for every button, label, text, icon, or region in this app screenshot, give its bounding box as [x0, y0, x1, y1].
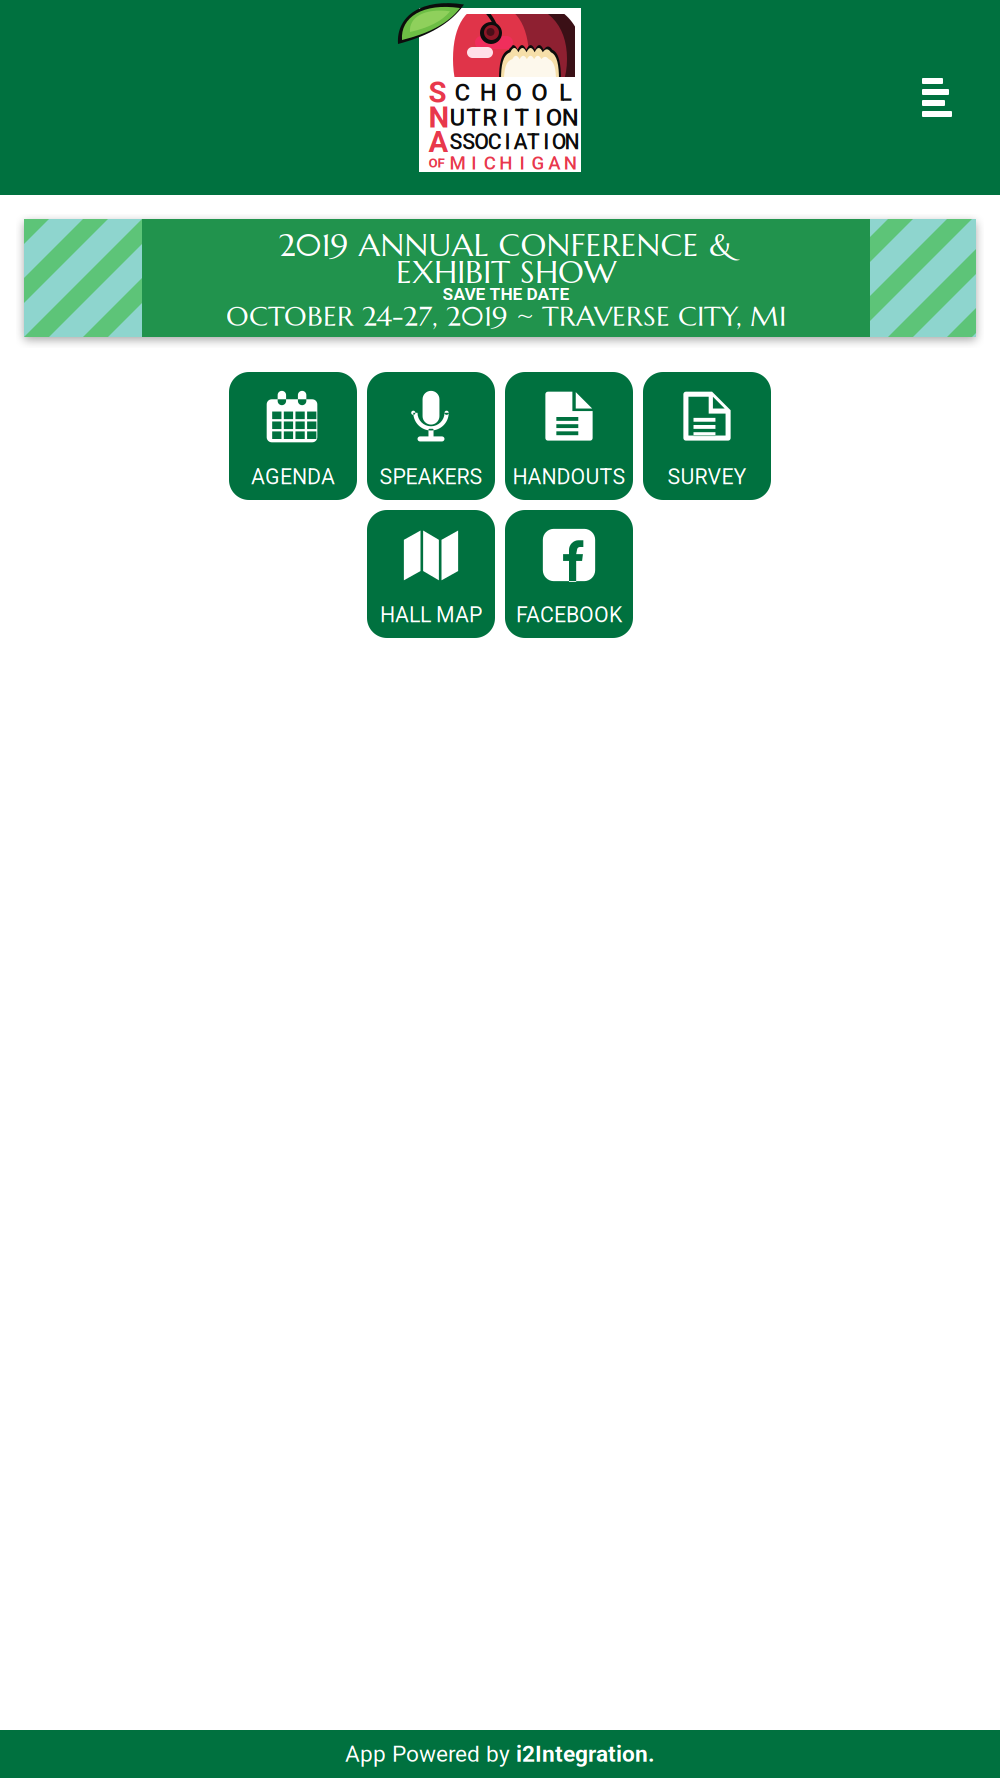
staticText: 2019 ANNUAL CONFERENCE & — [278, 225, 733, 265]
staticText: I — [505, 129, 511, 154]
staticText: O — [505, 78, 522, 106]
staticText: N — [565, 129, 580, 154]
staticText: S — [449, 129, 462, 154]
staticText: H — [499, 152, 512, 174]
staticText: T — [527, 129, 540, 154]
staticText: SAVE THE DATE — [442, 284, 569, 304]
staticText: HANDOUTS — [512, 464, 625, 489]
staticText: S — [462, 129, 475, 154]
staticText: OF — [428, 155, 444, 171]
staticText: N — [564, 152, 577, 174]
staticText: S — [428, 75, 446, 110]
button[interactable]: FACEBOOK — [505, 510, 633, 638]
staticText: i2Integration. — [516, 1741, 655, 1767]
button[interactable]: AGENDA — [229, 372, 357, 500]
button[interactable]: SPEAKERS — [367, 372, 495, 500]
staticText: G — [531, 152, 544, 174]
staticText: O — [474, 129, 489, 154]
staticText: C — [488, 129, 502, 154]
staticText: O — [531, 78, 548, 106]
staticText: A — [428, 125, 448, 159]
staticText: A — [513, 129, 527, 154]
staticText: O — [552, 129, 567, 154]
button[interactable]: Menu — [906, 62, 968, 132]
staticText: OCTOBER 24-27, 2019 ~ TRAVERSE CITY, MI — [226, 298, 786, 333]
staticText: AGENDA — [251, 464, 335, 489]
staticText: EXHIBIT SHOW — [396, 252, 616, 292]
staticText: SPEAKERS — [379, 464, 482, 489]
staticText: R — [482, 103, 497, 131]
staticText: I — [519, 152, 524, 174]
staticText: A — [548, 152, 560, 174]
button[interactable]: HALL MAP — [367, 510, 495, 638]
staticText: App Powered by — [345, 1741, 516, 1767]
staticText: O — [546, 103, 563, 131]
staticText: I — [471, 152, 476, 174]
staticText: I — [543, 129, 549, 154]
staticText: T — [466, 103, 481, 131]
staticText: H — [480, 78, 497, 106]
button[interactable]: HANDOUTS — [505, 372, 633, 500]
staticText: I — [502, 103, 509, 131]
staticText: N — [562, 103, 579, 131]
staticText: L — [559, 78, 572, 106]
staticText: SURVEY — [667, 464, 746, 489]
staticText: HALL MAP — [380, 602, 482, 627]
staticText: C — [454, 78, 470, 106]
staticText: T — [514, 103, 529, 131]
staticText: U — [450, 103, 466, 131]
staticText: C — [484, 152, 496, 174]
staticText: M — [450, 152, 466, 174]
staticText: FACEBOOK — [516, 602, 622, 627]
button[interactable]: SURVEY — [643, 372, 771, 500]
staticText: I — [534, 103, 541, 131]
staticText: N — [428, 100, 449, 135]
